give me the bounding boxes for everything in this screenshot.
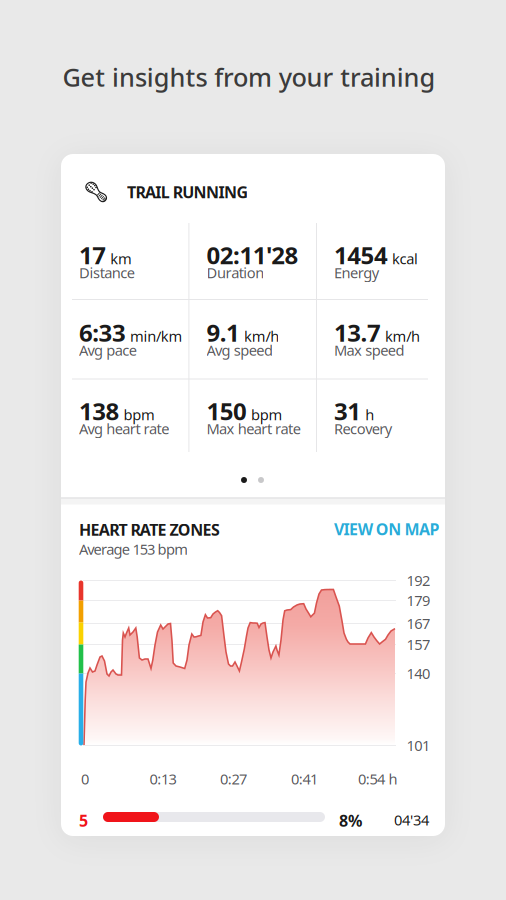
staticText: 13.7 [334,316,381,348]
staticText: 0 [81,769,89,788]
staticText: bpm [124,405,155,424]
staticText: 31 [334,395,361,427]
staticText: kcal [392,249,418,268]
staticText: bpm [251,405,282,424]
staticText: 0:41 [291,769,318,788]
staticText: Avg pace [79,340,137,360]
staticText: HEART RATE ZONES [79,519,220,540]
staticText: km/h [244,326,279,346]
button[interactable]: VIEW ON MAP [334,518,439,540]
staticText: 138 [79,395,120,427]
staticText: km [110,249,132,268]
staticText: 04'34 [394,810,429,829]
staticText: 0:54 h [358,769,397,788]
staticText: Energy [334,263,379,282]
staticText: Max speed [334,340,404,360]
staticText: VIEW ON MAP [334,518,439,540]
staticText: 179 [406,590,430,610]
staticText: 157 [406,634,430,654]
staticText: Get insights from your training [62,60,435,94]
staticText: 02:11'28 [206,239,299,271]
staticText: 5 [79,810,88,831]
staticText: 17 [79,239,106,271]
staticText: 6:33 [79,316,126,348]
staticText: Distance [79,263,135,282]
staticText: Max heart rate [206,419,301,438]
staticText: 0:13 [149,769,177,788]
staticText: km/h [385,326,420,346]
staticText: 192 [406,570,430,590]
staticText: 8% [339,810,362,831]
staticText: 150 [206,395,247,427]
staticText: Recovery [334,419,392,438]
staticText: h [365,405,374,424]
staticText: TRAIL RUNNING [127,181,248,203]
staticText: 1454 [334,239,388,271]
staticText: 0:27 [220,769,247,788]
staticText: Avg heart rate [79,419,169,438]
staticText: Avg speed [206,340,273,360]
staticText: 9.1 [206,316,240,348]
staticText: Duration [206,263,264,282]
staticText: 101 [406,735,430,755]
staticText: 140 [406,663,430,683]
staticText: min/km [130,326,182,346]
staticText: 167 [406,613,430,633]
staticText: Average 153 bpm [79,539,188,559]
